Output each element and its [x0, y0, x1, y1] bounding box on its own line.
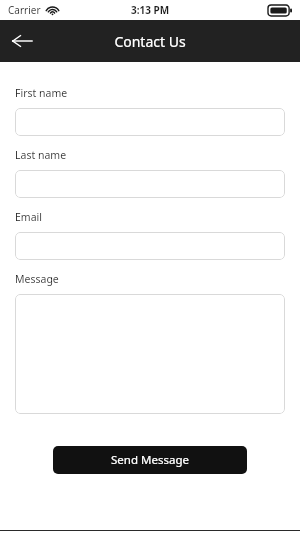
staticText: First name	[15, 86, 68, 100]
button[interactable]: First name input	[15, 108, 285, 136]
staticText: Last name	[15, 148, 67, 162]
button[interactable]: Email input	[15, 232, 285, 260]
staticText: Carrier	[8, 3, 41, 17]
staticText: Send Message	[111, 452, 189, 468]
staticText: 3:13 PM	[131, 3, 170, 17]
staticText: Message	[15, 272, 59, 286]
button[interactable]: Back	[0, 20, 44, 62]
staticText: Contact Us	[114, 32, 186, 51]
button[interactable]: Send Message	[53, 446, 247, 474]
button[interactable]: Last name input	[15, 170, 285, 198]
staticText: Email	[15, 210, 42, 224]
button[interactable]: Message input	[15, 294, 285, 414]
